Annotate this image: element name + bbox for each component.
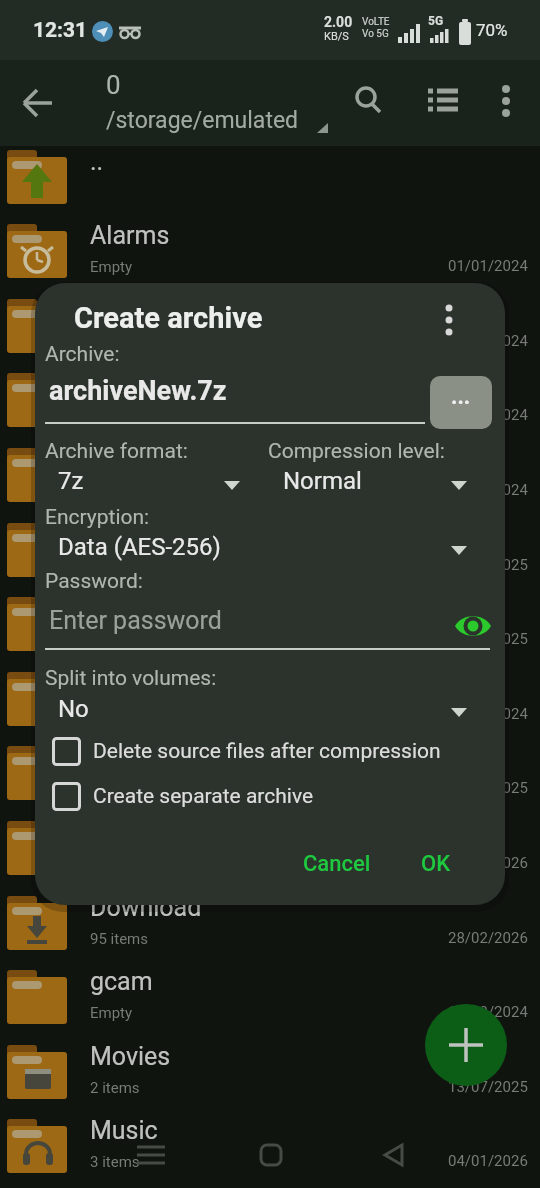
staticText: Empty — [90, 258, 133, 276]
button[interactable] — [0, 892, 540, 966]
staticText: 6 items — [90, 557, 140, 575]
button[interactable]: Normal — [275, 465, 480, 501]
staticText: Download — [90, 893, 202, 922]
button[interactable] — [0, 444, 540, 518]
button[interactable] — [0, 593, 540, 667]
staticText: Notifications — [90, 669, 233, 698]
staticText: Delete source files after compression — [93, 739, 441, 764]
staticText: 03/01/2026 — [448, 854, 528, 872]
staticText: 12/03/2024 — [448, 1003, 528, 1021]
button[interactable] — [425, 1004, 507, 1086]
button[interactable]: OK — [408, 839, 464, 889]
staticText: Password: — [45, 569, 143, 594]
staticText: Archive: — [45, 342, 120, 367]
button[interactable] — [0, 668, 540, 742]
button[interactable]: Cancel — [285, 839, 389, 889]
staticText: Create archive — [74, 301, 263, 335]
button[interactable] — [374, 1136, 416, 1176]
button[interactable] — [429, 297, 471, 343]
button[interactable] — [52, 776, 482, 818]
staticText: Audiobooks — [90, 370, 223, 399]
button[interactable] — [0, 817, 540, 891]
staticText: 12:31 — [33, 18, 88, 43]
staticText: Data (AES-256) — [58, 533, 221, 561]
staticText: No — [58, 695, 89, 723]
staticText: 5G — [428, 14, 444, 28]
staticText: 13/07/2025 — [448, 1078, 528, 1096]
button[interactable]: Enter password — [45, 601, 445, 647]
staticText: Fonts — [90, 594, 153, 623]
staticText: 05/03/2024 — [448, 406, 528, 424]
staticText: Split into volumes: — [45, 666, 217, 691]
staticText: Create separate archive — [93, 784, 314, 809]
staticText: 04/01/2026 — [448, 1152, 528, 1170]
button[interactable] — [0, 220, 540, 294]
staticText: gcam — [90, 967, 153, 996]
button[interactable]: Data (AES-256) — [49, 531, 479, 567]
staticText: 70% — [476, 20, 508, 40]
staticText: 3 items — [90, 631, 140, 649]
staticText: Encryption: — [45, 505, 150, 530]
button[interactable] — [128, 1136, 174, 1176]
staticText: Android — [90, 296, 177, 325]
button[interactable] — [454, 610, 492, 642]
button[interactable] — [422, 80, 464, 122]
staticText: Normal — [283, 467, 362, 495]
staticText: 11/06/2024 — [448, 481, 528, 499]
button[interactable]: ... — [430, 376, 492, 429]
staticText: 7z — [58, 467, 84, 495]
button[interactable] — [16, 80, 62, 126]
staticText: Movies — [90, 1042, 171, 1071]
staticText: .. — [90, 147, 104, 176]
button[interactable] — [0, 295, 540, 369]
staticText: KB/S — [324, 30, 349, 43]
staticText: Empty — [90, 407, 133, 425]
staticText: VoLTE — [362, 16, 390, 28]
staticText: 09/09/2024 — [448, 705, 528, 723]
staticText: 15/02/2025 — [448, 556, 528, 574]
button[interactable]: No — [49, 693, 479, 729]
staticText: Compression level: — [268, 439, 445, 464]
button[interactable] — [0, 146, 540, 220]
staticText: Documents — [90, 520, 218, 549]
button[interactable] — [0, 1115, 540, 1188]
staticText: Archive format: — [45, 439, 188, 464]
staticText: 3 items — [90, 1153, 140, 1171]
button[interactable] — [0, 966, 540, 1040]
button[interactable]: 7z — [49, 465, 249, 501]
staticText: Music — [90, 1116, 158, 1145]
staticText: /storage/emulated — [106, 107, 299, 134]
button[interactable] — [0, 742, 540, 816]
staticText: 20/04/2025 — [448, 630, 528, 648]
staticText: Pictures — [90, 743, 182, 772]
staticText: 2 items — [90, 1079, 140, 1097]
staticText: OK — [421, 851, 451, 877]
staticText: 95 items — [90, 930, 148, 948]
staticText: archiveNew.7z — [49, 375, 227, 407]
staticText: Enter password — [49, 606, 222, 635]
button[interactable] — [348, 80, 390, 122]
button[interactable] — [0, 1041, 540, 1115]
staticText: Alarms — [90, 221, 170, 250]
staticText: Empty — [90, 1004, 133, 1022]
staticText: Cancel — [303, 851, 371, 877]
button[interactable] — [250, 1136, 292, 1176]
button[interactable] — [0, 519, 540, 593]
staticText: 4 items — [90, 333, 140, 351]
button[interactable] — [52, 731, 482, 773]
button[interactable]: archiveNew.7z — [45, 371, 425, 425]
staticText: 01/01/2024 — [448, 332, 528, 350]
button[interactable] — [0, 369, 540, 443]
button[interactable]: /storage/emulated — [100, 105, 340, 139]
staticText: 2.00 — [324, 14, 353, 30]
staticText: ... — [451, 384, 471, 410]
button[interactable] — [488, 80, 528, 122]
staticText: 0 — [106, 70, 121, 100]
staticText: 01/01/2024 — [448, 257, 528, 275]
staticText: DCIM — [90, 445, 152, 474]
staticText: 8 items — [90, 780, 140, 798]
